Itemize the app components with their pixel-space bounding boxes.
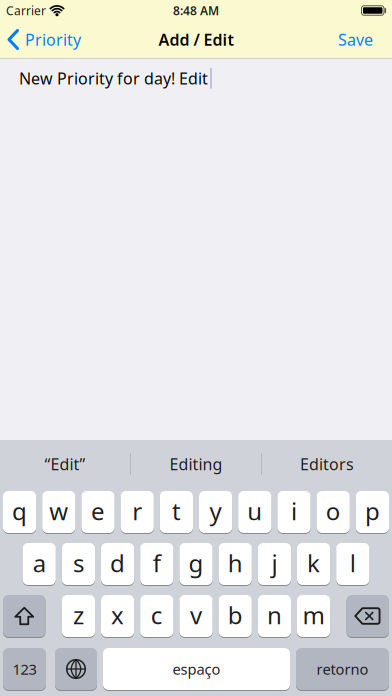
staticText: q <box>12 495 27 527</box>
button[interactable]: f <box>140 543 173 585</box>
staticText: New Priority for day! Edit <box>19 68 208 89</box>
staticText: Save <box>338 29 373 50</box>
staticText: Carrier <box>6 2 46 18</box>
staticText: y <box>210 495 222 527</box>
staticText: m <box>303 599 325 631</box>
staticText: p <box>365 495 380 527</box>
button[interactable]: Editors <box>262 453 392 475</box>
staticText: c <box>151 599 163 631</box>
button[interactable]: espaço <box>103 648 290 690</box>
button[interactable]: w <box>42 491 75 533</box>
staticText: l <box>350 547 356 579</box>
button[interactable]: k <box>297 543 330 585</box>
staticText: z <box>73 599 84 631</box>
staticText: n <box>267 599 282 631</box>
button[interactable]: “Edit” <box>0 453 130 475</box>
staticText: Editing <box>169 453 222 475</box>
staticText: h <box>228 547 243 579</box>
staticText: u <box>247 495 262 527</box>
staticText: x <box>111 599 124 631</box>
button[interactable]: a <box>23 543 56 585</box>
button[interactable]: m <box>297 595 330 637</box>
button[interactable]: e <box>81 491 115 533</box>
staticText: i <box>291 495 297 527</box>
button[interactable]: Priority <box>0 29 81 50</box>
button[interactable]: t <box>160 491 193 533</box>
staticText: f <box>153 547 161 579</box>
button[interactable]: c <box>140 595 173 637</box>
button[interactable]: s <box>62 543 95 585</box>
button[interactable]: u <box>238 491 271 533</box>
button[interactable]: i <box>277 491 311 533</box>
staticText: b <box>228 599 243 631</box>
staticText: Priority <box>25 29 81 50</box>
button[interactable]: Shift <box>3 595 45 637</box>
staticText: espaço <box>172 659 220 679</box>
button[interactable]: h <box>219 543 252 585</box>
button[interactable]: z <box>62 595 95 637</box>
button[interactable]: b <box>219 595 252 637</box>
button[interactable]: Next keyboard <box>55 648 97 690</box>
button[interactable]: Editing <box>131 453 261 475</box>
button[interactable]: o <box>317 491 350 533</box>
staticText: 8:48 AM <box>173 2 219 18</box>
button[interactable]: v <box>179 595 213 637</box>
button[interactable]: g <box>179 543 213 585</box>
button[interactable]: Save <box>338 29 392 50</box>
staticText: g <box>188 547 203 579</box>
button[interactable]: n <box>258 595 291 637</box>
staticText: retorno <box>316 659 368 679</box>
staticText: k <box>307 547 320 579</box>
staticText: o <box>326 495 341 527</box>
staticText: Add / Edit <box>158 29 233 50</box>
staticText: Editors <box>300 453 354 475</box>
button[interactable]: Delete <box>346 595 389 637</box>
button[interactable]: p <box>356 491 389 533</box>
button[interactable]: q <box>3 491 36 533</box>
button[interactable]: 123 <box>3 648 46 690</box>
staticText: r <box>132 495 142 527</box>
button[interactable]: j <box>258 543 291 585</box>
staticText: e <box>91 495 105 527</box>
staticText: w <box>49 495 68 527</box>
button[interactable]: retorno <box>296 648 389 690</box>
staticText: t <box>172 495 181 527</box>
staticText: 123 <box>12 659 36 679</box>
staticText: v <box>190 599 202 631</box>
button[interactable]: l <box>336 543 369 585</box>
button[interactable]: r <box>121 491 154 533</box>
staticText: s <box>73 547 84 579</box>
button[interactable]: x <box>101 595 134 637</box>
button[interactable]: y <box>199 491 232 533</box>
button[interactable]: d <box>101 543 134 585</box>
staticText: a <box>33 547 46 579</box>
staticText: j <box>271 547 277 579</box>
staticText: “Edit” <box>44 453 85 475</box>
staticText: d <box>110 547 125 579</box>
